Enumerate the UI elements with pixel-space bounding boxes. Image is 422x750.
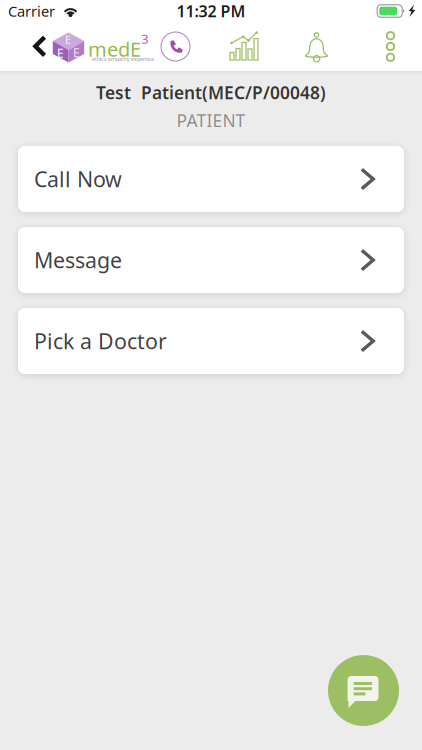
staticText: Pick a Doctor xyxy=(34,327,167,355)
button[interactable]: Message xyxy=(18,227,404,293)
button[interactable]: Chat xyxy=(328,655,399,726)
staticText: Carrier xyxy=(8,1,55,21)
staticText: E xyxy=(73,44,80,60)
button[interactable]: Call xyxy=(153,22,198,71)
staticText: E xyxy=(57,45,64,61)
staticText: ethics empathy expertise xyxy=(92,55,154,63)
button[interactable]: Pick a Doctor xyxy=(18,308,404,374)
button[interactable]: Reports xyxy=(222,22,267,71)
staticText: E xyxy=(65,32,71,47)
staticText: PATIENT xyxy=(176,109,245,132)
button[interactable]: More options xyxy=(368,22,413,71)
staticText: Message xyxy=(34,246,122,274)
staticText: Test Patient(MEC/P/00048) xyxy=(96,81,326,104)
button[interactable]: Call Now xyxy=(18,146,404,212)
button[interactable]: Notifications xyxy=(294,22,339,71)
staticText: medE xyxy=(88,36,141,62)
staticText: 11:32 PM xyxy=(176,0,245,22)
staticText: 3 xyxy=(141,30,149,47)
staticText: Call Now xyxy=(34,165,122,193)
button[interactable]: Back to home xyxy=(0,22,150,71)
